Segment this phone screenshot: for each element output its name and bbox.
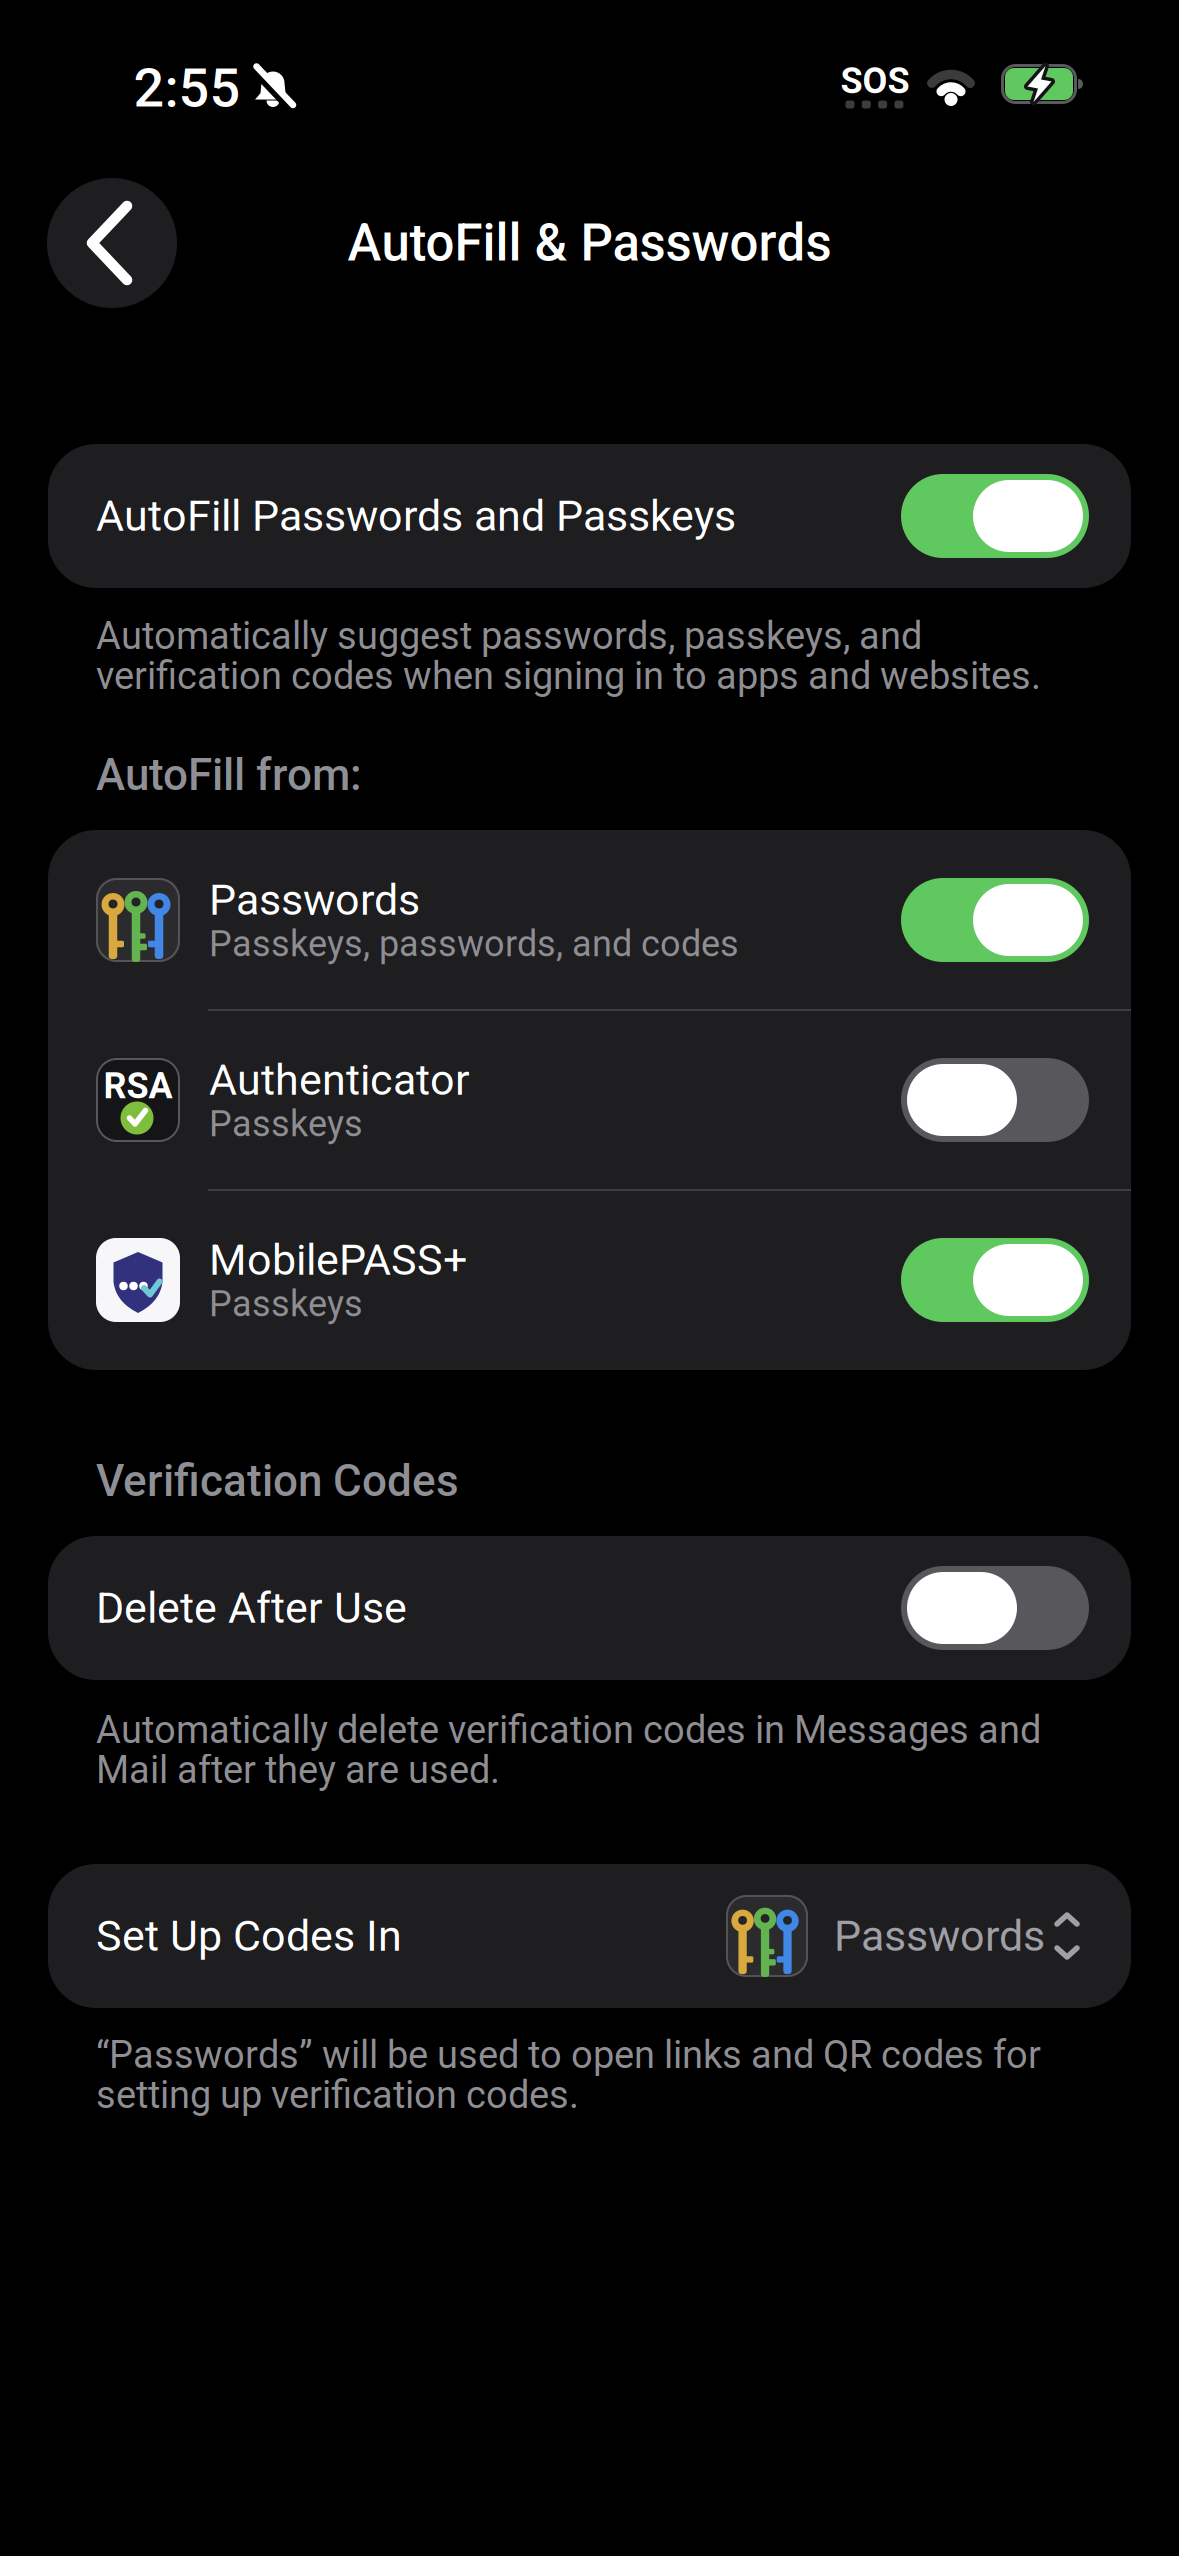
staticText: AutoFill & Passwords	[347, 213, 831, 273]
staticText: Automatically suggest passwords, passkey…	[96, 614, 922, 658]
staticText: Mail after they are used.	[96, 1748, 500, 1792]
staticText: Authenticator	[209, 1055, 470, 1105]
button[interactable]: AutoFill Passwords and Passkeys	[901, 474, 1089, 558]
staticText: Delete After Use	[96, 1583, 407, 1633]
button[interactable]: MobilePASS+	[901, 1238, 1089, 1322]
staticText: “Passwords” will be used to open links a…	[96, 2033, 1041, 2077]
staticText: Passkeys	[209, 1103, 363, 1145]
button[interactable]: Passwords	[901, 878, 1089, 962]
button[interactable]: Delete After Use	[901, 1566, 1089, 1650]
staticText: setting up verification codes.	[96, 2073, 579, 2117]
staticText: verification codes when signing in to ap…	[96, 654, 1041, 698]
staticText: RSA	[103, 1065, 172, 1107]
button[interactable]: Authenticator	[901, 1058, 1089, 1142]
staticText: Passkeys, passwords, and codes	[209, 923, 739, 965]
staticText: AutoFill from:	[96, 749, 362, 801]
staticText: Passwords	[834, 1911, 1045, 1961]
staticText: SOS	[840, 60, 909, 102]
staticText: AutoFill Passwords and Passkeys	[96, 491, 736, 541]
staticText: Automatically delete verification codes …	[96, 1708, 1041, 1752]
staticText: Set Up Codes In	[96, 1911, 402, 1961]
staticText: Passkeys	[209, 1283, 363, 1325]
button[interactable]: Back	[47, 178, 177, 308]
staticText: Passwords	[209, 875, 420, 925]
button[interactable]: Set Up Codes In	[726, 1895, 1079, 1977]
staticText: 2:55	[133, 56, 240, 120]
staticText: Verification Codes	[96, 1455, 459, 1507]
staticText: MobilePASS+	[209, 1235, 467, 1285]
